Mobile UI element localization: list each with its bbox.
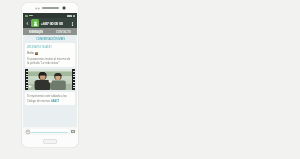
staticText: Hola	[27, 51, 34, 55]
staticText: Te paracemos invitar al estreno de la pe…	[27, 57, 73, 65]
button[interactable]: Play video	[25, 69, 75, 90]
button[interactable]: MENSAJES	[23, 28, 50, 35]
staticText: Te esperamos este sábado a las 18:15	[27, 94, 73, 98]
button[interactable]: Back	[25, 21, 30, 26]
button[interactable]: Profile	[31, 19, 39, 27]
button[interactable]: Insert emoji	[25, 129, 30, 134]
button[interactable]: More options	[70, 21, 75, 26]
staticText: CONVERSACIÓN MMS	[36, 37, 65, 41]
staticText: MENSAJES	[29, 30, 44, 34]
button[interactable]: 2012/06/14 16:40:01	[25, 43, 75, 67]
staticText: Código de reserva	[27, 99, 51, 103]
staticText: #A4C1	[51, 99, 60, 103]
staticText: CONTACTO	[56, 30, 72, 34]
button[interactable]	[30, 129, 69, 133]
button[interactable]: Te esperamos este sábado a las 18:15	[25, 92, 75, 105]
button[interactable]: CONTACTO	[50, 28, 77, 35]
staticText: 2012/06/14 16:40:01	[27, 45, 52, 49]
button[interactable]: Attach media	[70, 129, 75, 134]
staticText: +687 00 00 00	[41, 21, 64, 26]
